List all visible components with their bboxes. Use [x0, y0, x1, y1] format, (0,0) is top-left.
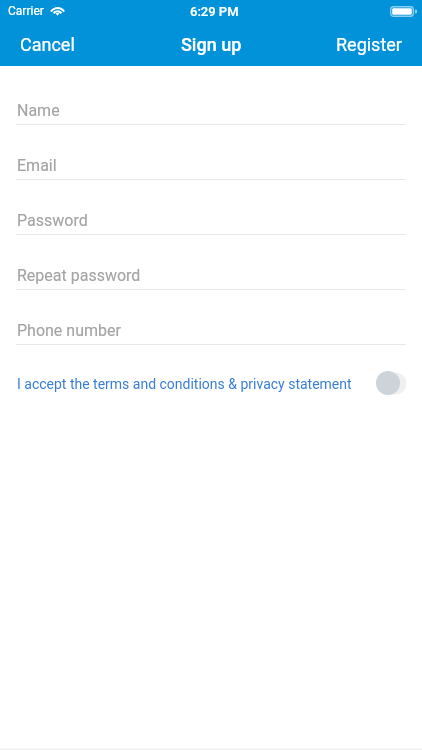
other: Battery full [390, 6, 417, 17]
button[interactable]: Email [0, 125, 422, 180]
button[interactable]: Password [0, 180, 422, 235]
staticText: 6:29 PM [190, 4, 239, 19]
staticText: Email [17, 156, 57, 175]
staticText: Repeat password [17, 266, 141, 285]
button[interactable]: Cancel [0, 28, 89, 61]
button[interactable]: Accept terms and conditions toggle [376, 370, 410, 396]
staticText: Register [336, 34, 402, 55]
button[interactable]: I accept the terms and conditions & priv… [0, 376, 352, 400]
staticText: Name [17, 101, 60, 120]
staticText: Sign up [181, 34, 242, 55]
button[interactable]: Phone number [0, 290, 422, 345]
button[interactable]: Repeat password [0, 235, 422, 290]
button[interactable]: Register [322, 28, 422, 61]
staticText: Phone number [17, 321, 121, 340]
other: Wi-Fi signal [50, 4, 65, 16]
staticText: Cancel [20, 34, 75, 55]
staticText: Carrier [8, 4, 44, 18]
staticText: Password [17, 211, 88, 230]
button[interactable]: Name [0, 70, 422, 125]
